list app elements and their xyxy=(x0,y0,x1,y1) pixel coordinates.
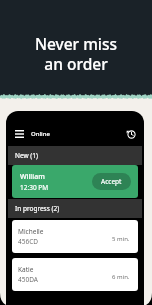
button[interactable]: William xyxy=(12,165,138,198)
button[interactable]: Michelle xyxy=(12,220,138,253)
staticText: Online xyxy=(31,130,50,138)
staticText: 6 min. xyxy=(112,273,130,281)
button[interactable]: Order history xyxy=(127,130,136,139)
button[interactable]: Menu xyxy=(15,130,24,138)
staticText: 12:30 PM xyxy=(20,183,49,192)
staticText: 450DA xyxy=(18,275,38,284)
staticText: Katie xyxy=(18,265,34,274)
staticText: New (1) xyxy=(15,151,38,160)
staticText: Accept xyxy=(101,177,122,186)
button[interactable]: Katie xyxy=(12,258,138,291)
staticText: Never miss an order xyxy=(0,33,152,74)
staticText: William xyxy=(20,172,45,182)
staticText: 456CD xyxy=(18,237,39,246)
button[interactable]: Accept xyxy=(92,173,131,190)
staticText: 5 min. xyxy=(112,235,130,243)
staticText: In progress (2) xyxy=(15,204,60,213)
staticText: Michelle xyxy=(18,227,44,236)
